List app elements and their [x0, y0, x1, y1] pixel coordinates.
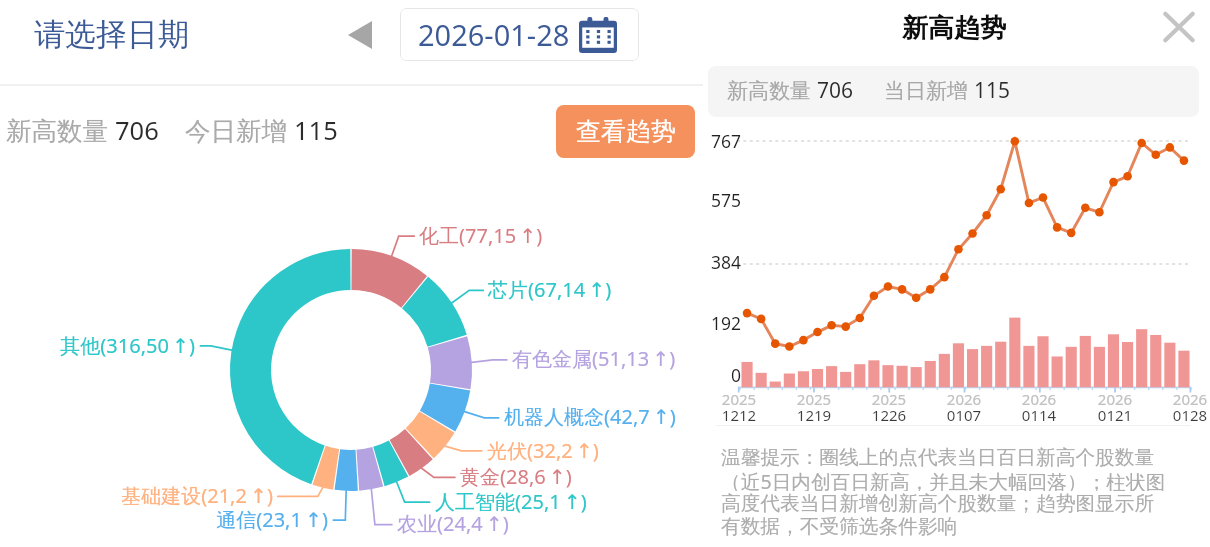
button[interactable]: 查看趋势: [556, 105, 695, 158]
staticText: 1212: [709, 405, 769, 425]
staticText: 2026: [1160, 389, 1210, 409]
staticText: 0128: [1160, 405, 1210, 425]
staticText: 575: [706, 188, 741, 212]
staticText: 384: [706, 250, 741, 274]
staticText: 2026: [1085, 389, 1145, 409]
staticText: 115: [974, 76, 1011, 105]
button[interactable]: Previous day: [348, 21, 372, 49]
staticText: 706: [115, 113, 159, 148]
staticText: 192: [706, 311, 741, 335]
staticText: 2025: [859, 389, 919, 409]
staticText: 2026-01-28: [418, 15, 570, 54]
staticText: 706: [817, 76, 854, 105]
staticText: 115: [294, 113, 338, 148]
staticText: 1226: [859, 405, 919, 425]
staticText: 0121: [1085, 405, 1145, 425]
staticText: 有数据，不受筛选条件影响: [721, 514, 958, 537]
staticText: 高度代表当日新增创新高个股数量；趋势图显示所: [721, 491, 1155, 514]
staticText: 请选择日期: [34, 15, 189, 54]
staticText: 今日新增: [185, 113, 294, 148]
staticText: 黄金(28,6 ↑): [460, 463, 572, 490]
staticText: 2026: [1009, 389, 1069, 409]
staticText: 查看趋势: [576, 116, 676, 147]
staticText: 2026: [934, 389, 994, 409]
button[interactable]: Close: [1158, 6, 1200, 48]
staticText: 0114: [1009, 405, 1069, 425]
staticText: 新高数量: [727, 76, 817, 105]
staticText: 当日新增: [884, 76, 974, 105]
staticText: 新高数量: [6, 113, 115, 148]
button[interactable]: 2026-01-28: [400, 8, 639, 61]
staticText: 0107: [934, 405, 994, 425]
staticText: 其他(316,50 ↑): [0, 332, 195, 359]
staticText: （近5日内创百日新高，并且未大幅回落）；柱状图: [721, 468, 1166, 491]
staticText: 有色金属(51,13 ↑): [512, 345, 676, 372]
staticText: 化工(77,15 ↑): [419, 222, 543, 249]
staticText: 2025: [784, 389, 844, 409]
staticText: 通信(23,1 ↑): [68, 506, 328, 533]
staticText: 0: [706, 363, 741, 387]
staticText: 芯片(67,14 ↑): [488, 276, 612, 303]
staticText: 机器人概念(42,7 ↑): [504, 403, 676, 430]
staticText: 农业(24,4 ↑): [397, 510, 509, 537]
staticText: 温馨提示：圈线上的点代表当日百日新高个股数量: [721, 445, 1155, 468]
staticText: 新高趋势: [902, 12, 1006, 45]
staticText: 光伏(32,2 ↑): [487, 437, 599, 464]
staticText: 1219: [784, 405, 844, 425]
staticText: 基础建设(21,2 ↑): [13, 482, 273, 509]
staticText: 767: [706, 129, 741, 153]
staticText: 人工智能(25,1 ↑): [435, 488, 587, 515]
staticText: 2025: [709, 389, 769, 409]
